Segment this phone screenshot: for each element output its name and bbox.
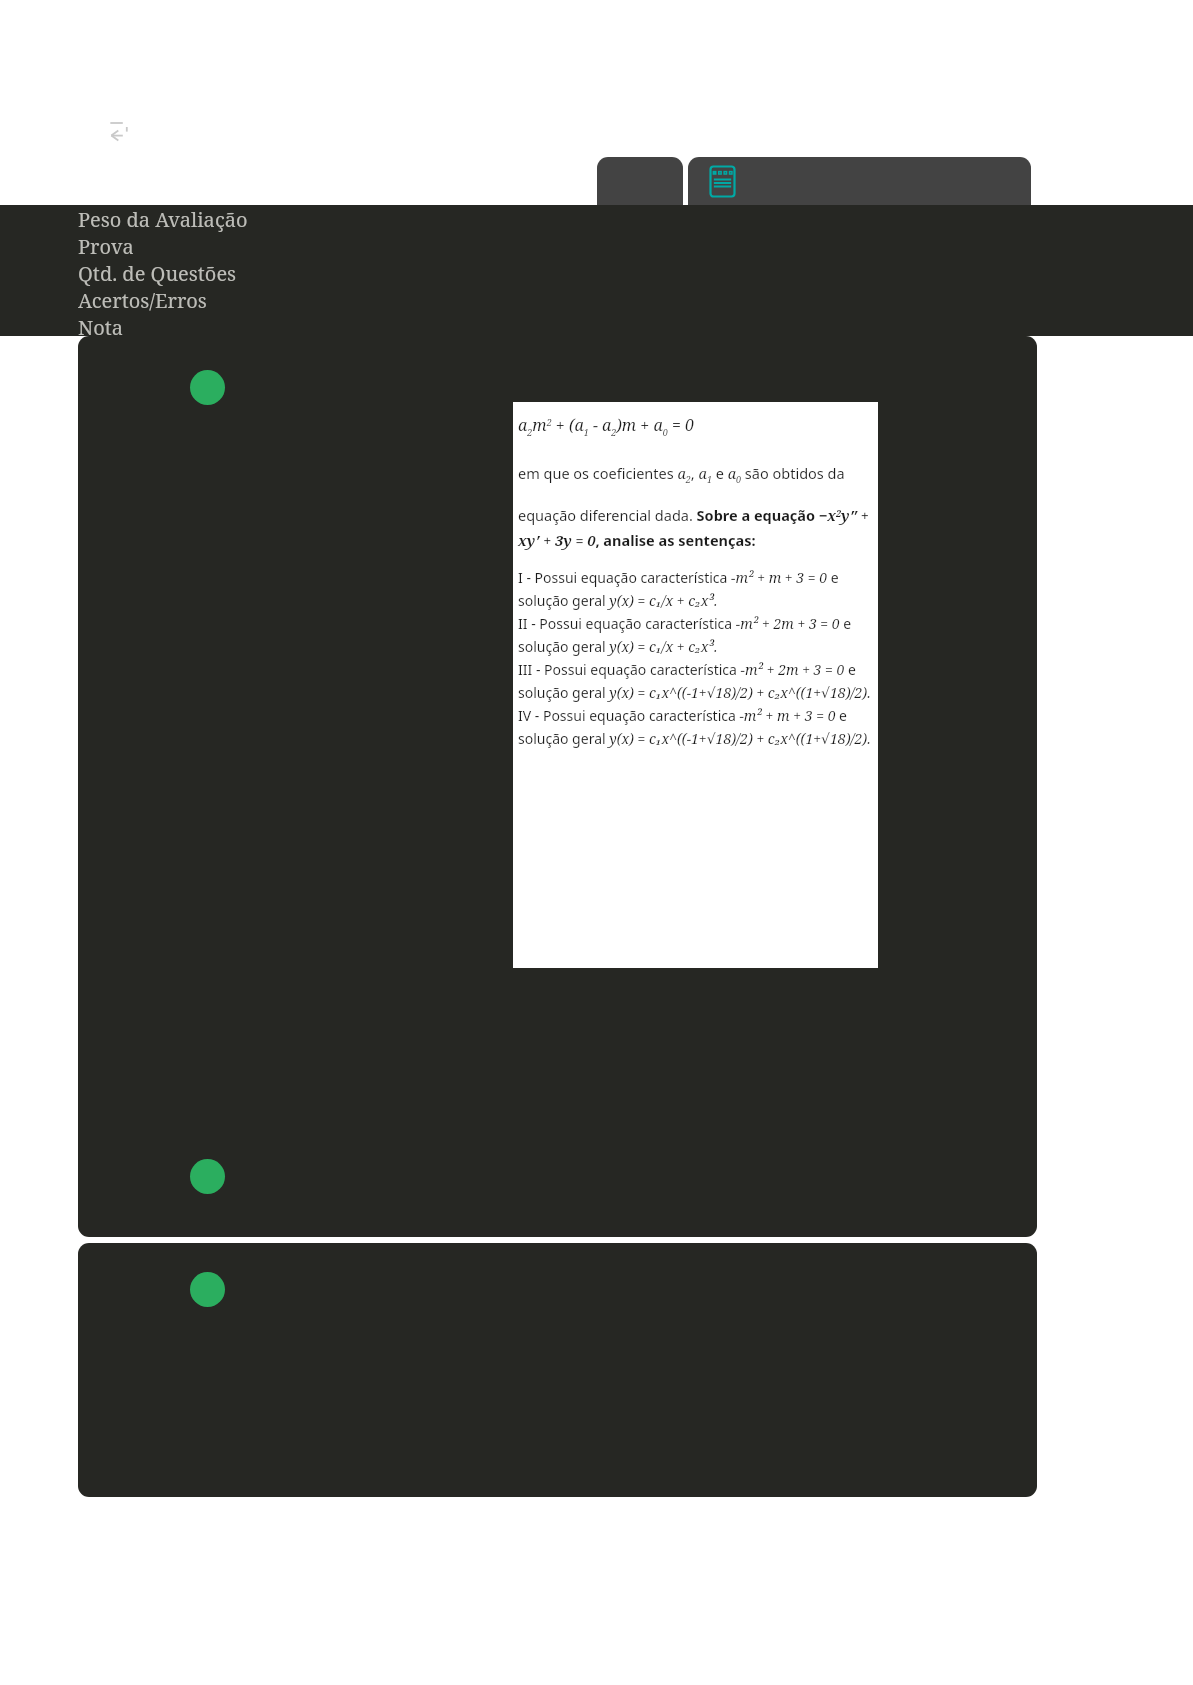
staticText: I - Possui equação característica −m² + … bbox=[518, 568, 876, 610]
button[interactable]: a2m2 + (a1 − a2)m + a0 = 0 bbox=[78, 336, 1037, 1237]
staticText: Prova bbox=[78, 233, 134, 260]
staticText: a2m2 + (a1 − a2)m + a0 = 0 bbox=[518, 414, 694, 439]
staticText: Nota bbox=[78, 314, 124, 341]
button[interactable]: Aba anterior bbox=[597, 157, 683, 205]
staticText: Peso da Avaliação bbox=[78, 206, 248, 233]
staticText: em que os coeficientes a2, a1 e a0 são o… bbox=[518, 463, 876, 550]
staticText: Acertos/Erros bbox=[78, 287, 207, 314]
staticText: III - Possui equação característica −m² … bbox=[518, 660, 876, 702]
staticText: Qtd. de Questões bbox=[78, 260, 237, 287]
staticText: IV - Possui equação característica −m² +… bbox=[518, 706, 876, 748]
button[interactable]: Documento da prova bbox=[688, 157, 1031, 205]
staticText: II - Possui equação característica −m² +… bbox=[518, 614, 876, 656]
button[interactable] bbox=[78, 1243, 1037, 1497]
button[interactable]: Voltar bbox=[98, 116, 134, 144]
